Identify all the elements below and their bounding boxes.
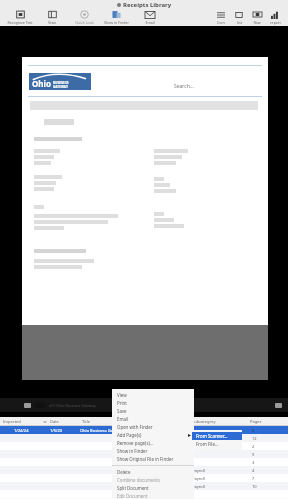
staticText: Open with Finder	[117, 424, 153, 430]
staticText: Remove page(s)...	[117, 440, 154, 446]
staticText: Payroll	[192, 484, 205, 489]
staticText: Pages	[250, 419, 262, 424]
staticText: Imported	[3, 419, 21, 424]
button[interactable]: Print	[112, 399, 194, 407]
staticText: Save	[117, 408, 127, 414]
staticText: 1/24/24	[14, 428, 29, 433]
staticText: Combine documents	[117, 477, 160, 483]
staticText: Show Original File in Finder	[117, 456, 174, 462]
staticText: 12	[252, 436, 257, 441]
staticText: Recognize Text	[7, 20, 33, 25]
staticText: Receipts Library	[123, 1, 172, 9]
staticText: 1/5/23	[50, 428, 63, 433]
button[interactable]: Payroll	[0, 474, 288, 482]
staticText: Delete	[117, 469, 131, 475]
staticText: BUSINESS	[53, 81, 69, 85]
button[interactable]: 3	[0, 458, 288, 466]
staticText: Email	[145, 20, 155, 25]
button[interactable]: flow	[248, 9, 266, 25]
button[interactable]: Show in Finder	[112, 447, 194, 455]
staticText: GATEWAY	[53, 85, 68, 89]
staticText: Show in Finder	[104, 20, 129, 25]
button[interactable]: 2	[0, 442, 288, 450]
staticText: 2	[252, 444, 255, 449]
button[interactable]: Date	[50, 417, 80, 426]
staticText: Payroll	[192, 476, 205, 481]
button[interactable]: Save	[112, 407, 194, 415]
staticText: 3	[252, 460, 255, 465]
staticText: View	[48, 20, 56, 25]
staticText: Icon	[217, 20, 225, 25]
button[interactable]: Add Page(s)	[112, 431, 194, 439]
button[interactable]: Payroll	[0, 482, 288, 490]
button[interactable]: Split Document	[112, 484, 194, 492]
staticText: 9	[252, 452, 255, 457]
button[interactable]: 1/24/24	[0, 426, 288, 434]
staticText: View	[117, 392, 127, 398]
button: Edit Document	[112, 492, 194, 499]
staticText: From Scanner...	[196, 433, 228, 439]
staticText: Date	[50, 419, 59, 424]
staticText: From File...	[196, 441, 219, 447]
staticText: Ohio	[32, 78, 51, 89]
staticText: Ohio Business Gateway	[80, 428, 124, 433]
button[interactable]: Recognize Text	[4, 9, 36, 25]
staticText: report	[270, 20, 281, 25]
button[interactable]: report	[266, 9, 284, 25]
staticText: 5	[252, 428, 255, 433]
staticText: Quick Look	[75, 20, 94, 25]
staticText: Search...	[174, 83, 194, 90]
staticText: Split Document	[117, 485, 149, 491]
button[interactable]: 9	[0, 450, 288, 458]
staticText: 7	[252, 476, 255, 481]
button[interactable]: Subcategory	[192, 417, 246, 426]
button[interactable]: Remove page(s)...	[112, 439, 194, 447]
button[interactable]: Next page	[275, 403, 282, 408]
button[interactable]: Pages	[250, 417, 276, 426]
staticText: 4	[252, 468, 255, 473]
button[interactable]: Show in Finder	[100, 9, 132, 25]
button[interactable]: Title	[82, 417, 190, 426]
button[interactable]: Open with Finder	[112, 423, 194, 431]
button[interactable]: Show Original File in Finder	[112, 455, 194, 463]
staticText: Title	[82, 419, 90, 424]
button: Combine documents	[112, 476, 194, 484]
staticText: Print	[117, 400, 127, 406]
button[interactable]: View	[112, 391, 194, 399]
staticText: flow	[253, 20, 261, 25]
staticText: Subcategory	[192, 419, 216, 424]
button[interactable]: View	[36, 9, 68, 25]
staticText: Edit Document	[117, 493, 148, 499]
button[interactable]: From File...	[192, 440, 242, 448]
button[interactable]: Email	[134, 9, 166, 25]
button[interactable]: Payroll	[0, 466, 288, 474]
button[interactable]: Imported	[3, 417, 40, 426]
staticText: Add Page(s)	[117, 432, 142, 438]
staticText: list	[237, 20, 242, 25]
button[interactable]: From Scanner...	[192, 432, 242, 440]
staticText: 10	[252, 484, 257, 489]
staticText: Show in Finder	[117, 448, 148, 454]
button[interactable]: 12	[0, 434, 288, 442]
button[interactable]: Icon	[212, 9, 230, 25]
button[interactable]: list	[230, 9, 248, 25]
staticText: of 5 Ohio Business Gateway	[49, 403, 96, 408]
staticText: Email	[117, 416, 129, 422]
button[interactable]: Quick Look	[68, 9, 100, 25]
staticText: Payroll	[192, 468, 205, 473]
button[interactable]: Delete	[112, 468, 194, 476]
button[interactable]: Email	[112, 415, 194, 423]
button[interactable]: Previous page	[24, 403, 31, 408]
button[interactable]	[0, 490, 288, 498]
